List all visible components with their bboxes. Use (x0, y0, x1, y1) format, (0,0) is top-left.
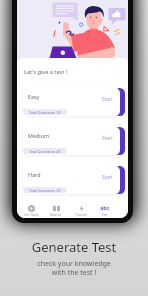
button[interactable]: Test (94, 203, 116, 218)
button[interactable]: Material (45, 203, 67, 218)
staticText: Material (50, 213, 62, 217)
staticText: Test (102, 213, 108, 217)
staticText: Practice (76, 213, 87, 217)
button[interactable]: Hard (23, 166, 125, 194)
staticText: Generate Test (0, 238, 148, 256)
staticText: Total Questions: 40 (29, 149, 61, 154)
staticText: Hard (28, 171, 41, 178)
staticText: Easy (28, 93, 40, 100)
staticText: Total Questions: 30 (29, 110, 61, 115)
staticText: Let's give a test ! (24, 68, 68, 76)
staticText: Medium (28, 132, 50, 139)
button[interactable]: Practice (70, 203, 92, 218)
button[interactable]: Easy (23, 88, 125, 116)
button[interactable]: Medium (23, 127, 125, 155)
staticText: Let's Study (24, 213, 39, 217)
staticText: Start (102, 135, 113, 141)
staticText: check your knowledge with the test ! (0, 259, 148, 277)
staticText: abc (100, 204, 110, 211)
staticText: Total Questions: 50 (29, 188, 61, 193)
button[interactable]: Let's Study (20, 203, 42, 218)
staticText: Start (102, 174, 113, 180)
staticText: Start (102, 96, 113, 102)
